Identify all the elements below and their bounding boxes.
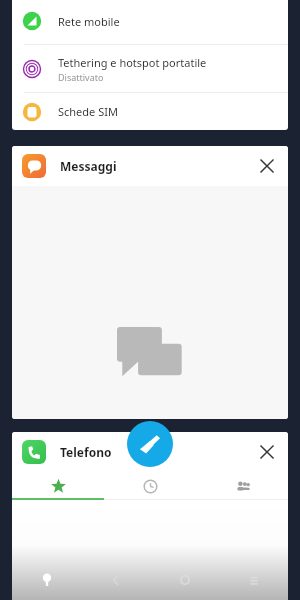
button[interactable]: Close Telefono	[254, 439, 280, 465]
staticText: Telefono	[60, 444, 112, 460]
staticText: Messaggi	[60, 158, 117, 174]
button[interactable]: Close Messaggi	[254, 153, 280, 179]
staticText: Disattivato	[58, 71, 104, 83]
button[interactable]: Telefono	[12, 432, 288, 600]
staticText: Tethering e hotspot portatile	[58, 55, 207, 70]
button[interactable]: Rete mobile	[12, 0, 288, 44]
button[interactable]: Contacts	[196, 472, 288, 500]
button[interactable]: Rete mobile	[12, 0, 288, 130]
button[interactable]: Tethering e hotspot portatile	[12, 45, 288, 92]
button[interactable]: Messaggi	[12, 146, 288, 419]
button[interactable]: Favourites	[12, 472, 104, 500]
button[interactable]: Clean	[127, 421, 173, 467]
button[interactable]: Schede SIM	[12, 93, 288, 130]
staticText: Rete mobile	[58, 14, 120, 29]
staticText: Schede SIM	[58, 104, 118, 119]
button[interactable]: Recents	[104, 472, 196, 500]
